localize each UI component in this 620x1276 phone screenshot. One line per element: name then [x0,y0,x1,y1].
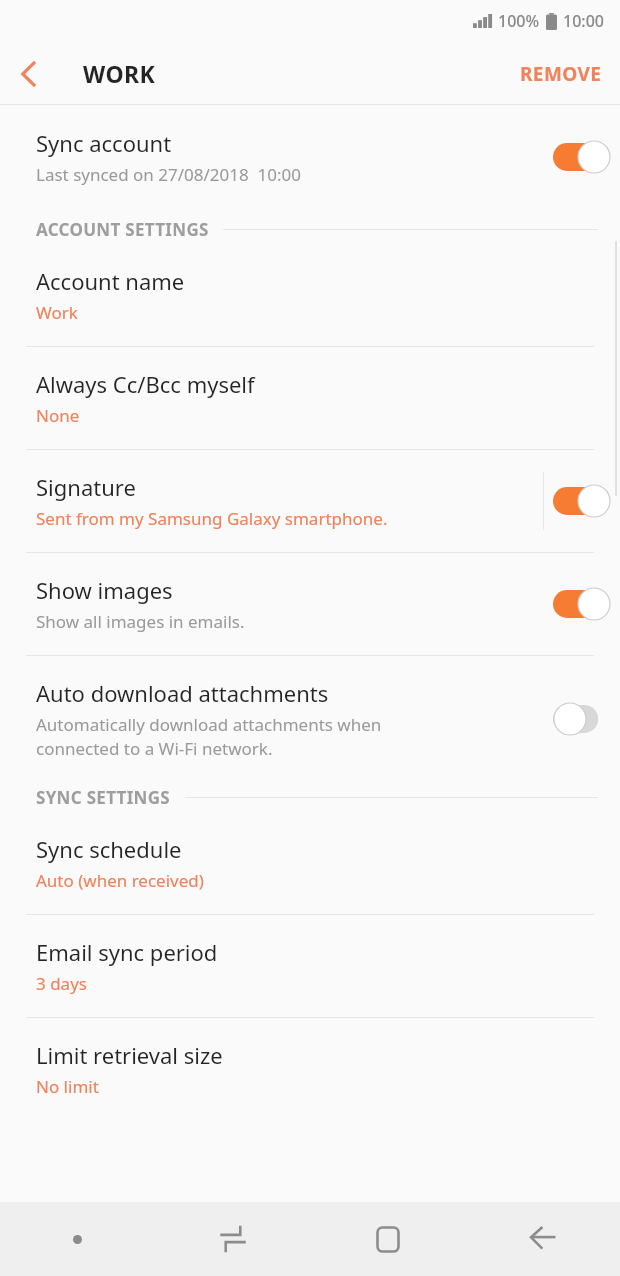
staticText: Last synced on 27/08/2018 10:00 [36,163,302,186]
button[interactable] [544,473,620,529]
staticText: REMOVE [520,61,602,87]
button[interactable]: Menu [0,1202,155,1276]
staticText: None [36,404,80,427]
button[interactable]: Sync account [0,105,620,214]
button[interactable]: Account name [0,244,620,346]
staticText: Show images [36,575,173,605]
staticText: Work [36,301,78,324]
button[interactable]: Always Cc/Bcc myself [0,347,620,449]
staticText: Limit retrieval size [36,1040,223,1070]
staticText: No limit [36,1075,99,1098]
staticText: 3 days [36,972,87,995]
staticText: Sync schedule [36,834,182,864]
button[interactable]: Home [310,1202,465,1276]
staticText: Show all images in emails. [36,610,245,633]
button[interactable]: Auto download attachments [0,656,620,782]
staticText: Signature [36,472,136,502]
staticText: 100% [498,10,540,32]
staticText: SYNC SETTINGS [36,786,171,809]
button[interactable] [544,691,620,747]
staticText: ACCOUNT SETTINGS [36,218,209,241]
staticText: Sent from my Samsung Galaxy smartphone. [36,507,388,530]
button[interactable]: Signature [0,450,620,552]
staticText: 10:00 [563,10,604,32]
staticText: Automatically download attachments when … [36,713,382,760]
staticText: Auto download attachments [36,678,329,708]
staticText: Account name [36,266,185,296]
button[interactable] [544,576,620,632]
button[interactable]: Back [0,46,56,102]
staticText: Always Cc/Bcc myself [36,369,255,399]
button[interactable]: Sync schedule [0,812,620,914]
staticText: Sync account [36,128,172,158]
button[interactable] [544,129,620,185]
button[interactable]: Limit retrieval size [0,1018,620,1120]
button[interactable]: Show images [0,553,620,655]
button[interactable]: Recents [155,1202,310,1276]
staticText: WORK [83,58,156,89]
button[interactable]: REMOVE [502,47,620,101]
staticText: Email sync period [36,937,218,967]
staticText: Auto (when received) [36,869,204,892]
button[interactable]: Email sync period [0,915,620,1017]
button[interactable]: Back [465,1202,620,1276]
